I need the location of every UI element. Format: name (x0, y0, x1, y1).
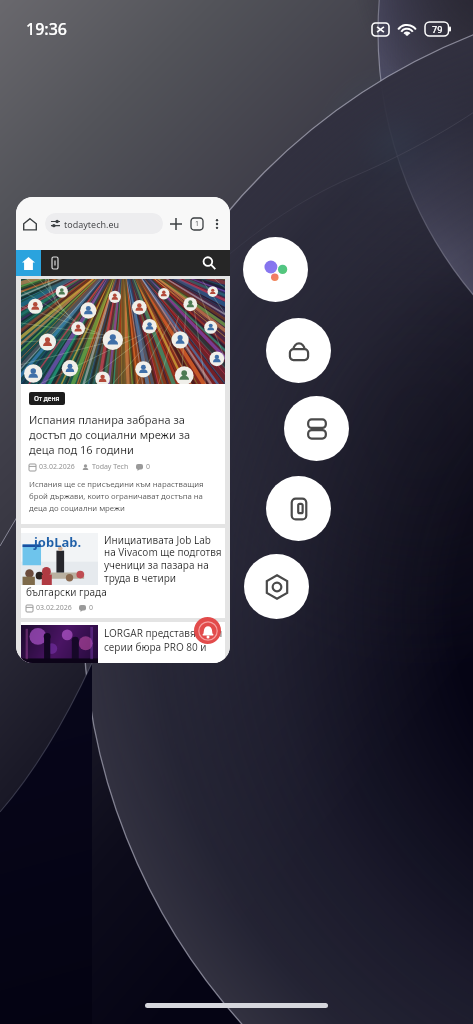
staticText: Инициативата Job Lab на Vivacom ще подго… (104, 533, 225, 585)
staticText: От деня (34, 394, 60, 403)
button[interactable]: todaytech.eu (16, 197, 230, 663)
staticText: 1 (195, 219, 200, 229)
staticText: LORGAR представя нови (104, 626, 223, 640)
staticText: Испания планира забрана за достъп до соц… (29, 412, 217, 457)
staticText: jobLab. (34, 533, 82, 551)
button[interactable]: Floating window (266, 476, 331, 541)
staticText: Today Tech (92, 462, 129, 472)
button[interactable]: Lock app (266, 318, 331, 383)
staticText: 79 (432, 23, 443, 35)
staticText: български града (26, 585, 107, 599)
staticText: серии бюра PRO 80 и (104, 640, 207, 654)
button[interactable]: Split screen (284, 396, 349, 461)
staticText: todaytech.eu (64, 218, 120, 230)
staticText: 03.02.2026 (39, 462, 75, 472)
button[interactable]: Assistant (243, 237, 308, 302)
staticText: 0 (146, 462, 151, 472)
staticText: 0 (89, 603, 94, 613)
staticText: 03.02.2026 (36, 603, 72, 613)
staticText: 19:36 (26, 18, 67, 40)
button[interactable]: App info (244, 554, 309, 619)
button[interactable]: Notifications (194, 617, 221, 644)
staticText: Испания ще се присъедини към нарастващия… (29, 479, 217, 514)
